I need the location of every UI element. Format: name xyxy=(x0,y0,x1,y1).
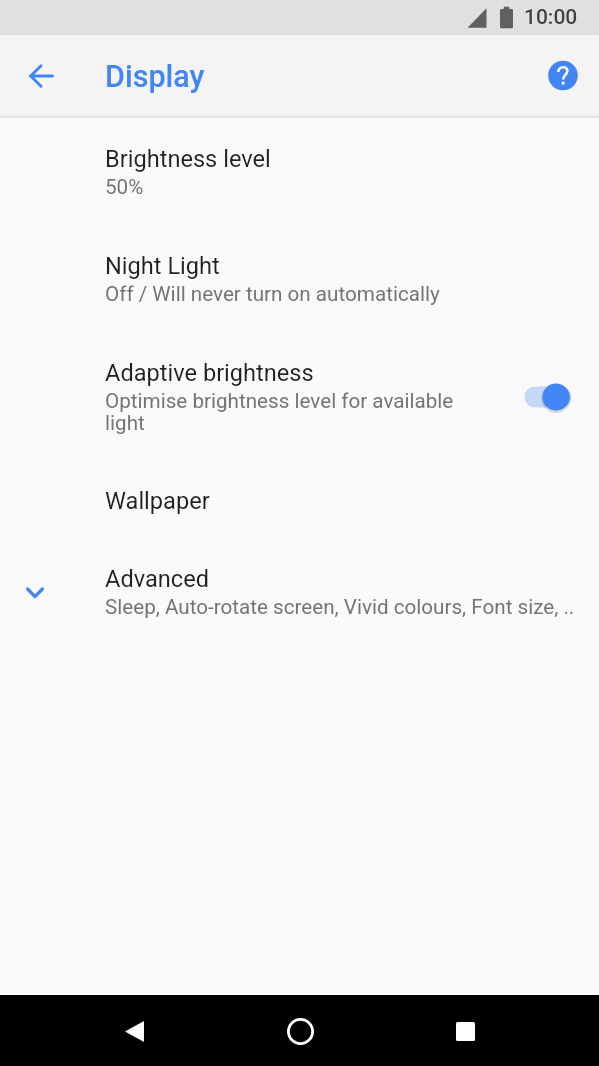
button[interactable]: Night Light xyxy=(0,226,599,333)
staticText: Adaptive brightness xyxy=(105,359,314,387)
staticText: 10:00 xyxy=(524,5,578,30)
staticText: Off / Will never turn on automatically xyxy=(105,282,440,306)
button[interactable]: Expand advanced settings xyxy=(0,539,599,646)
button[interactable]: Wallpaper xyxy=(0,461,599,539)
staticText: Night Light xyxy=(105,252,220,280)
button[interactable]: Back xyxy=(110,1007,158,1055)
button[interactable]: Recent apps xyxy=(441,1007,489,1055)
button[interactable]: Adaptive brightness xyxy=(0,333,599,461)
staticText: Brightness level xyxy=(105,145,271,173)
button[interactable]: Help xyxy=(540,53,586,99)
button[interactable]: Brightness level xyxy=(0,119,599,226)
staticText: Display xyxy=(105,59,205,95)
button[interactable]: Home xyxy=(276,1007,324,1055)
staticText: Wallpaper xyxy=(105,487,210,515)
staticText: Advanced xyxy=(105,565,209,593)
staticText: Sleep, Auto-rotate screen, Vivid colours… xyxy=(105,595,575,619)
staticText: 50% xyxy=(105,175,144,199)
button[interactable]: Expand advanced settings xyxy=(18,576,52,610)
button[interactable]: Adaptive brightness toggle xyxy=(523,369,576,425)
staticText: Optimise brightness level for available … xyxy=(105,389,478,435)
button[interactable]: Navigate up xyxy=(18,53,64,99)
